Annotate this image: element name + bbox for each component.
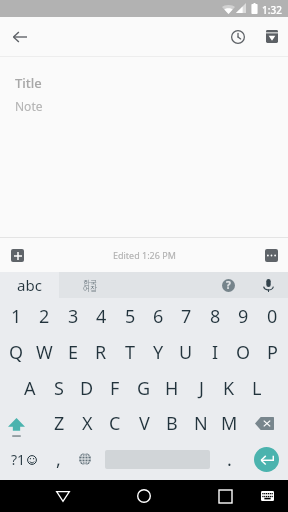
staticText: P (267, 340, 278, 365)
staticText: 4 (96, 304, 107, 329)
button[interactable]: J (187, 370, 215, 406)
staticText: B (166, 411, 178, 436)
staticText: 5 (125, 304, 136, 329)
staticText: R (95, 340, 107, 365)
staticText: V (139, 411, 150, 436)
staticText: J (199, 376, 204, 401)
button[interactable]: 2 (30, 298, 58, 334)
button[interactable]: Backspace (243, 405, 286, 441)
button[interactable]: L (243, 370, 271, 406)
button[interactable]: 6 (144, 298, 172, 334)
button[interactable]: P (258, 334, 286, 370)
button[interactable]: Back (47, 480, 79, 512)
button[interactable]: S (45, 370, 73, 406)
button[interactable]: 5 (116, 298, 144, 334)
button[interactable]: , (46, 441, 70, 477)
staticText: E (68, 340, 79, 365)
button[interactable]: E (59, 334, 87, 370)
button[interactable]: 1 (2, 298, 30, 334)
button[interactable]: 3 (59, 298, 87, 334)
staticText: Z (54, 411, 65, 436)
button[interactable]: Shift (2, 405, 45, 441)
button[interactable]: N (187, 405, 215, 441)
button[interactable]: B (158, 405, 186, 441)
staticText: I (212, 340, 219, 365)
button[interactable]: 7 (172, 298, 200, 334)
staticText: H (165, 376, 179, 401)
staticText: F (110, 376, 120, 401)
staticText: S (54, 376, 64, 401)
button[interactable]: Q (2, 334, 30, 370)
staticText: , (56, 447, 61, 472)
staticText: N (194, 411, 208, 436)
button[interactable]: G (130, 370, 158, 406)
staticText: 3 (68, 304, 79, 329)
button[interactable]: Navigate up (7, 24, 32, 49)
button[interactable]: F (101, 370, 129, 406)
button[interactable]: Change language (72, 441, 98, 477)
button[interactable]: Reminder (225, 24, 250, 49)
button[interactable]: U (172, 334, 200, 370)
staticText: 9 (238, 304, 249, 329)
button[interactable]: T (116, 334, 144, 370)
button[interactable]: More options (259, 243, 283, 267)
staticText: ? (226, 278, 231, 292)
button[interactable]: W (30, 334, 58, 370)
staticText: 7 (181, 304, 192, 329)
button[interactable]: Space (100, 441, 214, 477)
button[interactable]: C (101, 405, 129, 441)
button[interactable]: M (215, 405, 243, 441)
staticText: Q (9, 340, 24, 365)
staticText: D (80, 376, 94, 401)
staticText: abc (17, 275, 42, 295)
button[interactable]: Hide keyboard (251, 480, 283, 512)
button[interactable]: X (73, 405, 101, 441)
button[interactable]: abc (0, 272, 59, 298)
button[interactable]: V (130, 405, 158, 441)
button[interactable]: R (87, 334, 115, 370)
staticText: O (236, 340, 251, 365)
button[interactable]: Help (215, 272, 241, 298)
button[interactable]: 한국 어장 (59, 272, 121, 298)
staticText: Title (15, 74, 42, 92)
staticText: ?1 (11, 450, 26, 469)
button[interactable]: 8 (201, 298, 229, 334)
button[interactable]: O (229, 334, 257, 370)
staticText: 2 (39, 304, 50, 329)
staticText: 0 (267, 304, 278, 329)
button[interactable]: Y (144, 334, 172, 370)
button[interactable]: Z (45, 405, 73, 441)
staticText: G (137, 376, 151, 401)
button[interactable]: Home (128, 480, 160, 512)
button[interactable]: I (201, 334, 229, 370)
button[interactable]: Voice input (255, 272, 281, 298)
button[interactable]: D (73, 370, 101, 406)
button[interactable]: Recent apps (209, 480, 241, 512)
button[interactable]: 4 (87, 298, 115, 334)
staticText: 6 (153, 304, 164, 329)
staticText: . (227, 447, 232, 472)
button[interactable]: Archive (259, 24, 284, 49)
button[interactable]: 0 (258, 298, 286, 334)
staticText: W (36, 340, 53, 365)
button[interactable]: Enter (244, 441, 288, 477)
button[interactable]: Add attachment (5, 243, 29, 267)
staticText: Note (15, 98, 43, 114)
button[interactable]: K (215, 370, 243, 406)
button[interactable]: 9 (229, 298, 257, 334)
button[interactable]: H (158, 370, 186, 406)
staticText: Y (153, 340, 164, 365)
button[interactable]: A (16, 370, 44, 406)
staticText: U (179, 340, 193, 365)
staticText: 1 (11, 304, 22, 329)
staticText: 1:32 (262, 3, 282, 17)
staticText: L (252, 376, 262, 401)
button[interactable]: . (216, 441, 242, 477)
button[interactable]: Symbols (2, 441, 46, 477)
staticText: Edited 1:26 PM (113, 249, 176, 261)
staticText: 8 (210, 304, 221, 329)
staticText: A (24, 376, 36, 401)
staticText: X (82, 411, 93, 436)
staticText: 한국 어장 (83, 278, 97, 293)
staticText: K (223, 376, 235, 401)
